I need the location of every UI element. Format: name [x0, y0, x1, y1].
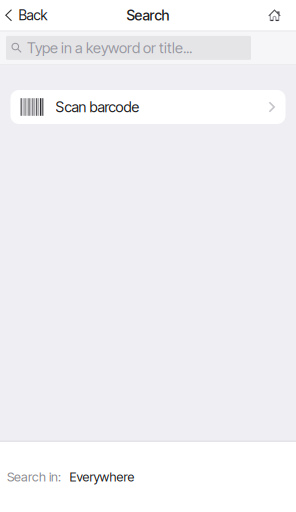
staticText: Everywhere: [69, 469, 134, 485]
button[interactable]: Everywhere: [61, 459, 146, 495]
staticText: Back: [18, 7, 47, 24]
staticText: Search in:: [7, 469, 61, 485]
button[interactable]: Back: [0, 0, 55, 31]
staticText: Type in a keyword or title...: [27, 39, 192, 57]
staticText: Scan barcode: [55, 98, 139, 116]
button[interactable]: Home: [257, 0, 291, 31]
staticText: Search: [126, 7, 169, 24]
button[interactable]: Scan barcode: [10, 90, 285, 124]
button[interactable]: Type in a keyword or title...: [6, 36, 251, 60]
